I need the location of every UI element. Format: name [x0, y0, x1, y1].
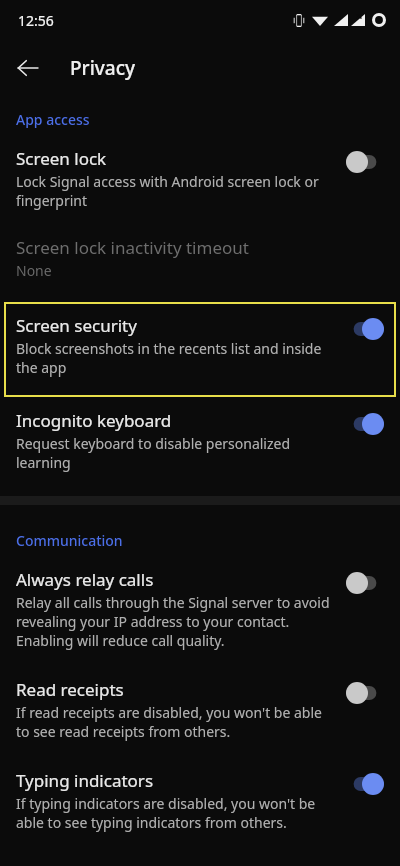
- staticText: Typing indicators: [16, 769, 154, 792]
- staticText: Request keyboard to disable personalized…: [16, 434, 336, 472]
- staticText: Screen lock: [16, 147, 107, 170]
- staticText: None: [16, 261, 52, 280]
- staticText: Privacy: [70, 55, 135, 81]
- staticText: Communication: [16, 531, 123, 550]
- button[interactable]: Typing indicators: [0, 761, 400, 852]
- button[interactable]: Toggle on: [346, 318, 384, 340]
- staticText: Read receipts: [16, 678, 124, 701]
- button[interactable]: Toggle on: [346, 413, 384, 435]
- staticText: App access: [16, 110, 90, 129]
- staticText: 12:56: [18, 11, 54, 30]
- staticText: Relay all calls through the Signal serve…: [16, 593, 336, 650]
- button[interactable]: Incognito keyboard: [0, 397, 400, 490]
- button[interactable]: Read receipts: [0, 670, 400, 761]
- button[interactable]: Back: [8, 48, 48, 88]
- staticText: Screen lock inactivity timeout: [16, 236, 249, 259]
- button[interactable]: Screen lock: [0, 133, 400, 230]
- button[interactable]: Screen lock inactivity timeout: [0, 230, 400, 302]
- staticText: If read receipts are disabled, you won't…: [16, 703, 336, 741]
- button[interactable]: Toggle off: [346, 682, 384, 704]
- button[interactable]: Toggle off: [346, 151, 384, 173]
- staticText: Screen security: [16, 314, 137, 337]
- button[interactable]: Always relay calls: [0, 554, 400, 670]
- button[interactable]: Toggle on: [346, 773, 384, 795]
- staticText: Block screenshots in the recents list an…: [16, 339, 336, 377]
- staticText: Lock Signal access with Android screen l…: [16, 172, 336, 210]
- button[interactable]: Toggle off: [346, 572, 384, 594]
- button[interactable]: Screen security: [4, 302, 396, 397]
- staticText: Always relay calls: [16, 568, 154, 591]
- staticText: Incognito keyboard: [16, 409, 172, 432]
- staticText: If typing indicators are disabled, you w…: [16, 794, 336, 832]
